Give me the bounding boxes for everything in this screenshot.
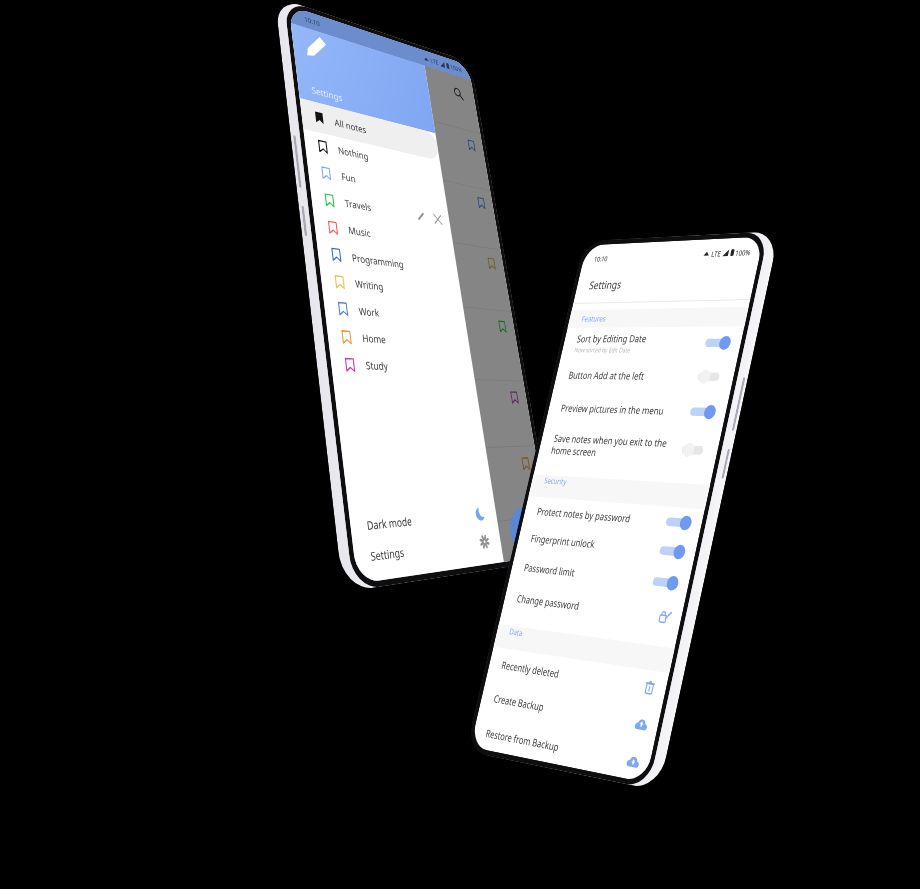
button[interactable]: Button Add at the left [553,359,737,395]
button[interactable]: Toggle [664,512,694,533]
button[interactable]: Programming [316,239,459,283]
button[interactable]: Recently deleted [486,647,669,707]
staticText: To read this year [370,561,435,582]
button[interactable]: Password limit [509,551,692,600]
staticText: Reading list [368,540,423,565]
staticText: Study [365,358,389,373]
button[interactable]: Fun [306,156,447,209]
staticText: Password limit [523,561,576,579]
button[interactable]: Rename folder [415,209,427,223]
button[interactable]: Toggle [657,541,688,562]
button[interactable]: Toggle [650,572,681,593]
staticText: LTE [710,249,722,259]
button[interactable]: Add note [507,505,548,560]
button[interactable]: Reading list [352,516,554,584]
staticText: Create Backup [492,691,546,714]
staticText: Sort by Editing Date [576,332,648,345]
staticText: 12.06.2021 [334,275,370,290]
staticText: Travels [344,196,372,214]
staticText: 10:10 [593,254,609,263]
staticText: 100% [734,247,752,258]
staticText: Fingerprint unlock [530,532,597,551]
staticText: Nothing [337,143,369,163]
button[interactable]: Toggle [688,403,718,421]
staticText: Recently deleted [500,658,561,681]
staticText: Ideas [329,232,355,250]
staticText: Settings [311,83,344,104]
staticText: Button Add at the left [567,369,646,382]
button[interactable]: Music [313,210,455,259]
button[interactable]: Travels [310,183,451,234]
staticText: Dark mode [366,513,413,533]
button[interactable]: All notes [299,98,440,161]
button[interactable]: Shopping list [298,85,490,191]
button[interactable]: Search [448,81,468,106]
button[interactable]: Delete folder [432,212,444,226]
staticText: Music [347,223,372,240]
staticText: App concepts list [331,251,394,271]
staticText: Protect notes by password [536,505,632,525]
button[interactable]: Trip planning [306,151,501,250]
button[interactable]: Song lyrics [333,376,535,453]
button[interactable]: Home [326,322,471,357]
button[interactable]: Toggle [679,441,710,460]
staticText: Security [543,475,568,487]
staticText: Work [358,304,380,320]
staticText: All notes [334,116,367,136]
button[interactable]: Ideas [314,220,511,312]
staticText: Data [508,626,524,639]
button[interactable]: Workout plan [342,446,547,538]
staticText: Preview pictures in the menu [560,401,665,417]
staticText: Day one, arrival [340,324,399,341]
button[interactable]: Save notes when you exit to the home scr… [536,424,722,472]
staticText: Restore from Backup [484,726,561,754]
staticText: 12.06.2021 [344,356,380,369]
button[interactable]: Settings [352,526,502,574]
staticText: Change password [516,592,581,613]
button[interactable]: Fingerprint unlock [516,523,699,569]
staticText: Trip planning [320,162,378,188]
staticText: Programming [351,250,405,271]
staticText: Shopping list [312,97,368,124]
button[interactable]: Restore from Backup [470,713,654,783]
staticText: Home [361,330,387,346]
button[interactable]: Toggle [703,334,733,352]
staticText: Milk, bread, eggs and [314,114,391,144]
button[interactable]: Work [323,293,467,332]
button[interactable]: Change password [501,580,685,636]
staticText: Now sorted by Edit Date [573,346,632,355]
other: Edit profile [304,32,328,61]
button[interactable]: Study [329,349,475,382]
staticText: 10:10 [304,14,321,28]
staticText: Travel journal [338,304,399,324]
button[interactable]: Travel journal [323,293,523,382]
staticText: Save notes when you exit to the home scr… [550,432,669,462]
button[interactable]: Writing [319,266,463,307]
staticText: Iceland ring road [323,181,386,205]
staticText: Writing [354,276,384,293]
staticText: 100% [449,62,463,74]
button[interactable]: Toggle [695,368,726,386]
button[interactable]: Protect notes by password [522,496,705,538]
staticText: Fun [340,169,357,185]
staticText: Settings [588,277,623,292]
button[interactable]: Sort by Editing Date [560,326,744,359]
staticText: Settings [370,544,406,564]
button[interactable]: Preview pictures in the menu [545,391,730,430]
button[interactable]: Create Backup [478,678,662,746]
staticText: LTE [430,56,439,67]
staticText: 12.06.2021 [317,136,352,154]
staticText: Features [580,313,607,324]
button[interactable]: Dark mode [349,499,498,542]
button[interactable]: Nothing [303,129,444,185]
